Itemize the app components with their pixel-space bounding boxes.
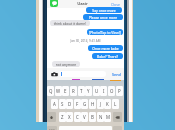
- button[interactable]: not anymore: [52, 61, 80, 67]
- staticText: H: [91, 101, 95, 107]
- button[interactable]: [Photo(Tap to View)]: [87, 29, 123, 35]
- button[interactable]: S: [59, 99, 66, 109]
- button[interactable]: L: [112, 99, 119, 109]
- button[interactable]: Shift: [47, 112, 56, 122]
- button[interactable]: Say once more: [86, 7, 122, 13]
- staticText: Close: [111, 2, 120, 7]
- button[interactable]: [59, 71, 106, 77]
- staticText: Z: [61, 114, 64, 120]
- staticText: O: [110, 88, 114, 94]
- staticText: M: [106, 114, 110, 120]
- button[interactable]: N: [97, 112, 104, 122]
- staticText: N: [99, 114, 103, 120]
- button[interactable]: Delete: [113, 112, 122, 122]
- button[interactable]: Camera: [51, 71, 58, 78]
- staticText: L: [114, 101, 117, 107]
- button[interactable]: Close: [110, 1, 121, 8]
- staticText: R: [72, 88, 75, 94]
- staticText: S: [61, 101, 64, 107]
- button[interactable]: I: [100, 86, 107, 96]
- staticText: E: [64, 88, 67, 94]
- staticText: Jan 30, 2014, 9:41 AM: [47, 39, 124, 43]
- button[interactable]: B: [89, 112, 96, 122]
- button[interactable]: D: [66, 99, 73, 109]
- staticText: Please once more: [84, 15, 122, 20]
- button[interactable]: think about it damn!: [50, 20, 90, 26]
- staticText: V: [83, 114, 86, 120]
- staticText: I: [103, 88, 105, 94]
- staticText: Y: [87, 88, 90, 94]
- staticText: Babe? There?: [93, 54, 122, 59]
- staticText: Say once more: [87, 8, 121, 13]
- staticText: U: [95, 88, 99, 94]
- button[interactable]: P: [116, 86, 123, 96]
- button[interactable]: Numbers: [47, 126, 57, 130]
- staticText: Q: [49, 88, 53, 94]
- staticText: J: [100, 101, 102, 107]
- button[interactable]: X: [66, 112, 73, 122]
- staticText: F: [76, 101, 79, 107]
- staticText: G: [83, 101, 87, 107]
- button[interactable]: Q: [47, 86, 54, 96]
- staticText: Send: [112, 72, 121, 77]
- button[interactable]: G: [81, 99, 88, 109]
- staticText: D: [68, 101, 72, 107]
- staticText: Once more babe: [89, 46, 122, 51]
- staticText: P: [118, 88, 121, 94]
- button[interactable]: T: [78, 86, 85, 96]
- button[interactable]: E: [62, 86, 69, 96]
- staticText: K: [106, 101, 109, 107]
- button[interactable]: Y: [85, 86, 92, 96]
- button[interactable]: M: [104, 112, 111, 122]
- button[interactable]: Messages: [50, 0, 58, 7]
- staticText: Uzair: [44, 1, 121, 7]
- button[interactable]: H: [89, 99, 96, 109]
- staticText: T: [80, 88, 83, 94]
- button[interactable]: U: [93, 86, 100, 96]
- button[interactable]: Send: [111, 71, 122, 78]
- button[interactable]: A: [51, 99, 58, 109]
- staticText: C: [76, 114, 79, 120]
- staticText: [Photo(Tap to View)]: [88, 30, 122, 35]
- staticText: 123: [49, 129, 55, 130]
- button[interactable]: Z: [59, 112, 66, 122]
- staticText: think about it damn!: [51, 21, 89, 26]
- button[interactable]: W: [55, 86, 62, 96]
- staticText: not anymore: [53, 62, 79, 67]
- staticText: X: [68, 114, 71, 120]
- button[interactable]: Babe? There?: [92, 53, 123, 59]
- staticText: A: [53, 101, 56, 107]
- staticText: W: [56, 88, 61, 94]
- button[interactable]: C: [74, 112, 81, 122]
- button[interactable]: J: [97, 99, 104, 109]
- button[interactable]: K: [104, 99, 111, 109]
- button[interactable]: O: [108, 86, 115, 96]
- staticText: B: [91, 114, 94, 120]
- button[interactable]: F: [74, 99, 81, 109]
- button[interactable]: V: [81, 112, 88, 122]
- button[interactable]: R: [70, 86, 77, 96]
- button[interactable]: Please once more: [83, 14, 123, 20]
- button[interactable]: Once more babe: [88, 45, 123, 51]
